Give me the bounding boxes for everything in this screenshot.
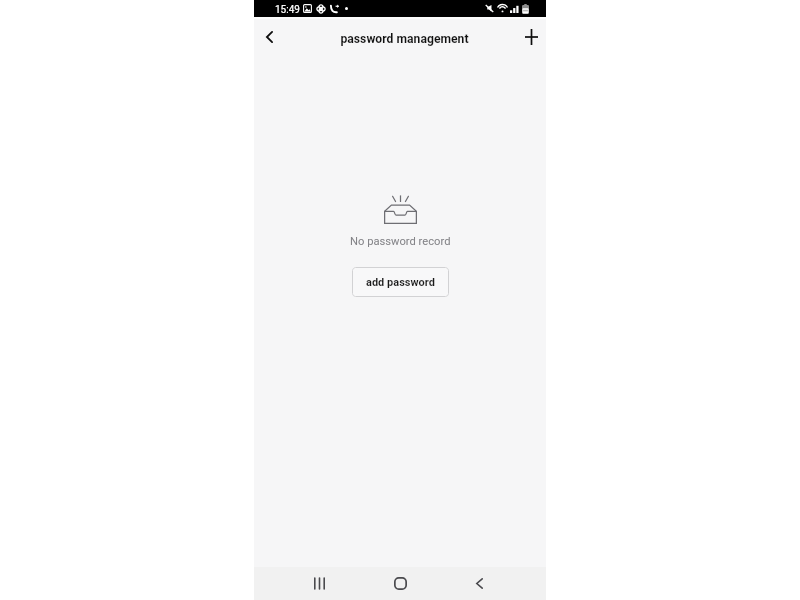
staticText: No password record	[350, 235, 451, 248]
staticText: add password	[366, 276, 435, 289]
button[interactable]: Back	[251, 19, 287, 55]
button[interactable]: Add password	[513, 19, 549, 55]
button[interactable]: add password	[352, 267, 449, 297]
staticText: password management	[340, 32, 469, 46]
button[interactable]: Back	[459, 567, 499, 600]
button[interactable]: Home	[380, 567, 420, 600]
button[interactable]: Recent apps	[299, 567, 339, 600]
staticText: 15:49	[275, 4, 300, 16]
